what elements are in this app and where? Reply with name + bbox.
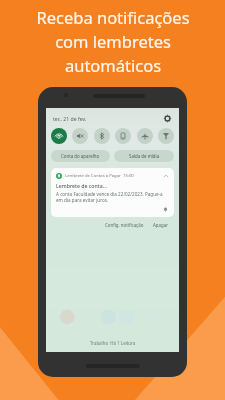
button[interactable]: Lembrete de Contas a Pagar <box>51 168 174 217</box>
button[interactable]: Saída de mídia <box>114 150 174 162</box>
staticText: Conta do aparelho <box>61 153 100 159</box>
staticText: Lembrete de Contas a Pagar <box>65 173 121 179</box>
button[interactable]: Conta do aparelho <box>51 150 110 162</box>
button[interactable]: Config. notificação <box>103 220 146 230</box>
button[interactable]: Settings <box>162 113 172 123</box>
staticText: Lembrete de conta... <box>56 182 107 189</box>
staticText: Saída de mídia <box>129 153 160 159</box>
staticText: Trabalho Há 1 Leitura <box>90 340 136 346</box>
staticText: ter., 21 de fev. <box>53 115 87 122</box>
staticText: A conta Faculdade vence dia 22/02/2023. … <box>56 191 169 203</box>
button[interactable]: Apagar <box>151 220 170 230</box>
button[interactable]: Flashlight <box>158 128 174 144</box>
staticText: 15:00 <box>123 173 134 179</box>
staticText: Receba notificações com lembretes automá… <box>36 6 190 77</box>
button[interactable]: Collapse <box>162 172 169 179</box>
button[interactable]: Auto rotate <box>115 128 131 144</box>
button[interactable]: Silence <box>162 206 169 213</box>
button[interactable]: Bluetooth <box>94 128 110 144</box>
button[interactable]: Sound <box>72 128 88 144</box>
button[interactable]: Airplane mode <box>137 128 153 144</box>
button[interactable]: Wi-Fi <box>51 128 67 144</box>
